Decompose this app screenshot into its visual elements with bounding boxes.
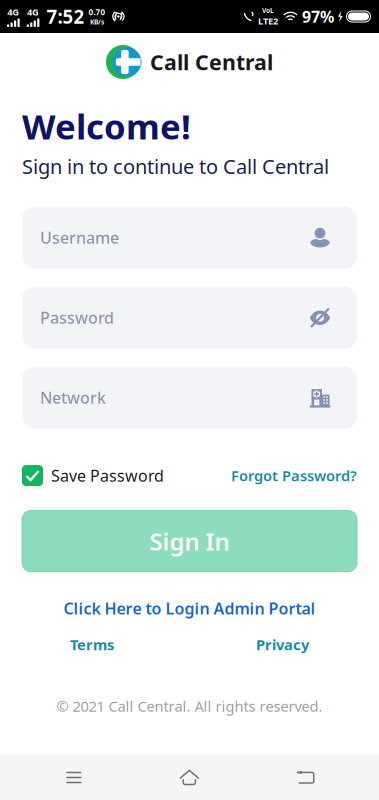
staticText: Forgot Password? <box>231 466 357 485</box>
button[interactable]: Forgot Password? <box>231 466 357 485</box>
staticText: Username <box>40 227 119 248</box>
button[interactable]: Click Here to Login Admin Portal <box>63 598 315 619</box>
staticText: 97% <box>302 6 334 27</box>
staticText: 0.70 <box>88 7 105 17</box>
staticText: Click Here to Login Admin Portal <box>63 598 315 619</box>
staticText: Password <box>40 307 114 328</box>
staticText: 7:52 <box>46 4 84 29</box>
staticText: Sign In <box>149 525 229 557</box>
staticText: KB/s <box>90 17 104 26</box>
staticText: 4G <box>27 6 39 18</box>
staticText: Call Central <box>150 48 273 76</box>
button[interactable]: Terms <box>70 635 114 654</box>
staticText: LTE2 <box>258 15 278 27</box>
staticText: 4G <box>7 6 19 18</box>
button[interactable]: Privacy <box>256 635 309 654</box>
staticText: Save Password <box>51 465 164 486</box>
staticText: © 2021 Call Central. All rights reserved… <box>56 696 322 716</box>
button[interactable]: Network <box>22 367 357 429</box>
button[interactable]: Sign In <box>22 511 357 572</box>
staticText: Privacy <box>256 635 309 654</box>
staticText: Network <box>40 387 106 408</box>
staticText: Terms <box>70 635 114 654</box>
staticText: Sign in to continue to Call Central <box>22 153 329 180</box>
button[interactable]: Back <box>247 755 363 800</box>
button[interactable]: Recents <box>16 755 132 800</box>
staticText: Welcome! <box>22 103 191 149</box>
button[interactable]: Username <box>22 207 357 269</box>
button[interactable]: Save Password <box>22 465 164 486</box>
button[interactable]: Home <box>132 755 247 800</box>
staticText: VoL <box>262 6 274 15</box>
button[interactable]: Password <box>22 287 357 349</box>
